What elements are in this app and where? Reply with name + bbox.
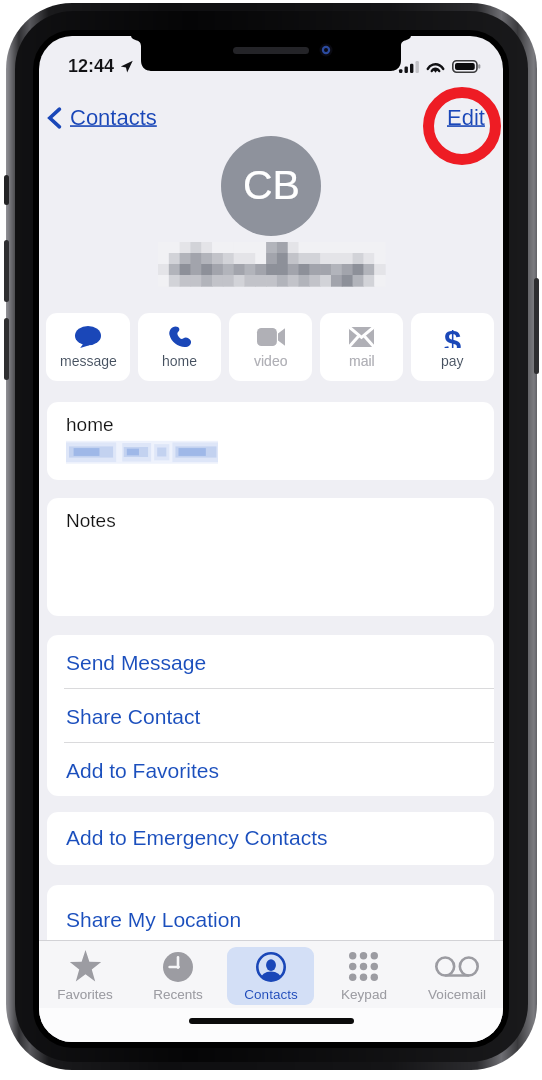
staticText: Contacts bbox=[70, 105, 157, 130]
button[interactable]: Voicemail bbox=[413, 947, 500, 1005]
staticText: Keypad bbox=[341, 987, 387, 1002]
button[interactable]: Contacts bbox=[227, 947, 314, 1005]
staticText: Add to Favorites bbox=[66, 759, 219, 782]
staticText: Recents bbox=[153, 987, 203, 1002]
button[interactable]: Recents bbox=[134, 947, 221, 1005]
staticText: Share Contact bbox=[66, 705, 201, 728]
staticText: Contacts bbox=[244, 987, 298, 1002]
button[interactable]: Share My Location bbox=[47, 885, 494, 955]
staticText: Send Message bbox=[66, 651, 207, 674]
staticText: CB bbox=[243, 162, 300, 208]
staticText: pay bbox=[441, 353, 464, 369]
staticText: Share My Location bbox=[66, 908, 242, 931]
button[interactable]: home bbox=[138, 313, 221, 381]
button[interactable]: Add to Favorites bbox=[47, 743, 494, 796]
staticText: video bbox=[254, 353, 288, 369]
button[interactable]: Notes bbox=[47, 498, 494, 616]
button[interactable]: mail bbox=[320, 313, 403, 381]
staticText: home bbox=[162, 353, 198, 369]
staticText: Edit bbox=[447, 105, 485, 130]
button[interactable]: Favorites bbox=[42, 947, 128, 1005]
staticText: Voicemail bbox=[428, 987, 486, 1002]
button[interactable]: video bbox=[229, 313, 312, 381]
button[interactable]: message bbox=[46, 313, 130, 381]
button[interactable]: Share Contact bbox=[47, 689, 494, 742]
staticText: home bbox=[66, 414, 114, 435]
button[interactable]: home bbox=[47, 402, 494, 480]
staticText: Notes bbox=[66, 510, 116, 531]
staticText: $ bbox=[444, 325, 462, 348]
staticText: mail bbox=[349, 353, 375, 369]
staticText: Favorites bbox=[57, 987, 113, 1002]
button[interactable]: Contacts bbox=[43, 101, 162, 134]
button[interactable]: Add to Emergency Contacts bbox=[47, 812, 494, 865]
staticText: message bbox=[60, 353, 117, 369]
button[interactable]: Keypad bbox=[320, 947, 407, 1005]
button[interactable]: $ bbox=[411, 313, 494, 381]
button[interactable]: Edit bbox=[442, 101, 490, 134]
staticText: Add to Emergency Contacts bbox=[66, 826, 328, 849]
button[interactable]: Send Message bbox=[47, 635, 494, 688]
staticText: 12:44 bbox=[68, 56, 115, 76]
